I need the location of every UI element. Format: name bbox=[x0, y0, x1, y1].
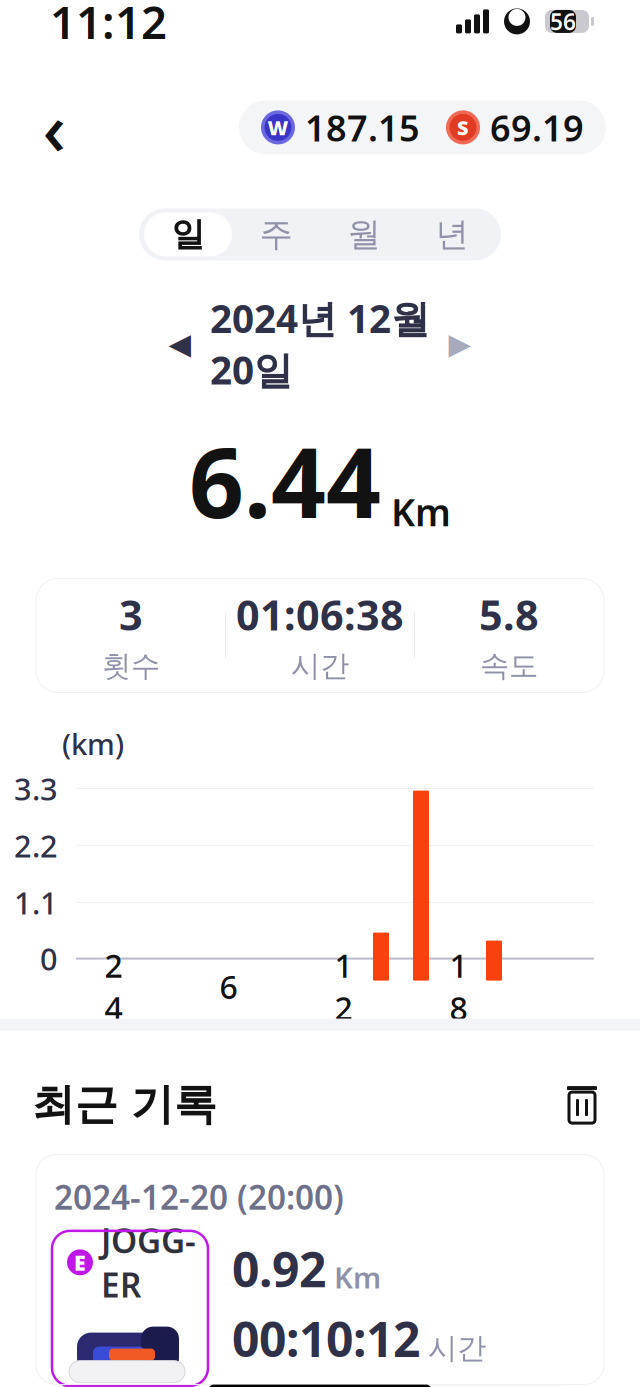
staticText: 시간 bbox=[428, 1330, 486, 1366]
button[interactable]: Back bbox=[22, 95, 86, 159]
staticText: JOGGER bbox=[101, 1218, 196, 1307]
staticText: ‹ bbox=[42, 80, 65, 175]
button[interactable]: Delete records bbox=[554, 1077, 610, 1133]
staticText: 56 bbox=[550, 6, 576, 36]
button[interactable]: 2024-12-20 (20:00) bbox=[36, 1155, 604, 1385]
staticText: 년 bbox=[435, 214, 468, 255]
staticText: 12 bbox=[334, 944, 352, 1029]
staticText: 속도 bbox=[480, 648, 538, 684]
staticText: (km) bbox=[62, 724, 124, 763]
staticText: 00:10:12 bbox=[232, 1307, 420, 1370]
staticText: Km bbox=[334, 1258, 381, 1297]
button[interactable]: Next day bbox=[435, 322, 485, 366]
staticText: 187.15 bbox=[305, 103, 420, 151]
staticText: 3.3 bbox=[14, 768, 58, 809]
button[interactable]: W bbox=[239, 100, 606, 154]
staticText: 5.8 bbox=[479, 587, 539, 642]
staticText: 최근 기록 bbox=[32, 1078, 217, 1131]
staticText: 2024년 12월 20일 bbox=[210, 292, 430, 395]
staticText: 2.2 bbox=[14, 825, 58, 866]
button[interactable]: 년 bbox=[408, 212, 496, 256]
staticText: 69.19 bbox=[490, 103, 584, 151]
staticText: 18 bbox=[449, 944, 467, 1029]
button[interactable]: 주 bbox=[232, 212, 320, 256]
staticText: S bbox=[457, 114, 469, 141]
staticText: 6 bbox=[219, 965, 237, 1008]
staticText: 월 bbox=[347, 214, 380, 255]
staticText: 횟수 bbox=[102, 648, 160, 684]
staticText: 0.92 bbox=[232, 1237, 326, 1301]
staticText: 3 bbox=[119, 587, 143, 642]
button[interactable]: 월 bbox=[320, 212, 408, 256]
staticText: 6.44 bbox=[189, 417, 381, 545]
staticText: E bbox=[74, 1248, 86, 1276]
staticText: 01:06:38 bbox=[236, 587, 404, 642]
staticText: 0 bbox=[40, 938, 58, 979]
button[interactable]: Previous day bbox=[155, 322, 205, 366]
staticText: 주 bbox=[259, 214, 292, 255]
button[interactable]: 일 bbox=[144, 212, 232, 256]
staticText: Km bbox=[391, 487, 451, 537]
staticText: 일 bbox=[171, 214, 204, 255]
staticText: 24 bbox=[104, 944, 122, 1029]
staticText: 1.1 bbox=[14, 882, 58, 923]
staticText: 2024-12-20 (20:00) bbox=[54, 1175, 344, 1219]
staticText: 11:12 bbox=[50, 0, 167, 51]
staticText: 시간 bbox=[291, 648, 349, 684]
staticText: W bbox=[267, 114, 288, 141]
staticText: ▶ bbox=[448, 327, 471, 360]
staticText: ◀ bbox=[168, 327, 191, 360]
